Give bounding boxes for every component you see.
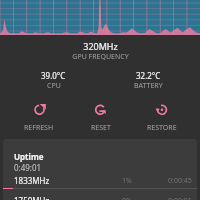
staticText: 0:00:01	[168, 196, 192, 200]
staticText: 0%	[122, 196, 132, 200]
staticText: REFRESH	[24, 123, 54, 133]
button[interactable]: Uptime	[3, 139, 197, 173]
staticText: 32.2°C	[136, 70, 161, 81]
staticText: 1%	[122, 176, 132, 186]
staticText: GPU FREQUENCY	[72, 52, 129, 62]
other: RESTORE	[152, 100, 171, 119]
staticText: 1833MHz	[14, 175, 50, 186]
button[interactable]: RESET	[70, 100, 131, 133]
staticText: RESET	[91, 123, 111, 133]
staticText: 39.0°C	[41, 70, 66, 81]
staticText: 0:00:45	[168, 176, 192, 186]
button[interactable]: REFRESH	[8, 100, 70, 133]
staticText: 1750MHz	[14, 195, 50, 200]
other: REFRESH	[30, 100, 49, 119]
staticText: Uptime	[14, 151, 44, 162]
staticText: 0:49:01	[14, 162, 42, 173]
staticText: CPU	[47, 81, 61, 91]
staticText: 320MHz	[83, 40, 118, 52]
button[interactable]: 1833MHz	[3, 175, 197, 188]
other: RESET	[91, 100, 110, 119]
button[interactable]: RESTORE	[131, 100, 192, 133]
staticText: RESTORE	[147, 123, 177, 133]
staticText: BATTERY	[134, 81, 163, 91]
button[interactable]: 1750MHz	[3, 195, 197, 200]
